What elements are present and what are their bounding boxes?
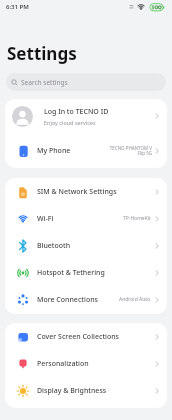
staticText: Android Auto bbox=[119, 296, 151, 303]
staticText: Search settings bbox=[21, 78, 68, 87]
staticText: Settings bbox=[7, 42, 77, 65]
staticText: Personalization bbox=[37, 359, 89, 369]
staticText: More Connections bbox=[37, 295, 98, 305]
button[interactable]: Display & Brightness bbox=[5, 377, 167, 404]
button[interactable]: My Phone bbox=[5, 133, 167, 168]
staticText: Display & Brightness bbox=[37, 386, 107, 396]
button[interactable]: Bluetooth bbox=[5, 232, 167, 259]
staticText: My Phone bbox=[37, 146, 71, 156]
staticText: 6:31 PM bbox=[6, 3, 29, 11]
staticText: Enjoy cloud services bbox=[44, 119, 96, 126]
button[interactable]: Personalization bbox=[5, 350, 167, 377]
button[interactable]: Search settings bbox=[6, 73, 166, 91]
button[interactable]: Hotspot & Tethering bbox=[5, 259, 167, 286]
button[interactable]: Wi-Fi bbox=[5, 205, 167, 232]
staticText: Log In to TECNO ID bbox=[44, 107, 109, 117]
staticText: SIM & Network Settings bbox=[37, 187, 117, 197]
staticText: Bluetooth bbox=[37, 241, 71, 251]
button[interactable]: Cover Screen Collections bbox=[5, 323, 167, 350]
staticText: TECNO PHANTOM V Flip 5G bbox=[109, 145, 152, 157]
button[interactable]: Log In to TECNO ID bbox=[5, 99, 167, 133]
staticText: TP-HomeKit bbox=[123, 215, 151, 222]
staticText: Cover Screen Collections bbox=[37, 332, 120, 342]
staticText: Hotspot & Tethering bbox=[37, 268, 105, 278]
button[interactable]: SIM & Network Settings bbox=[5, 178, 167, 205]
button[interactable]: More Connections bbox=[5, 286, 167, 313]
staticText: Wi-Fi bbox=[37, 214, 54, 224]
